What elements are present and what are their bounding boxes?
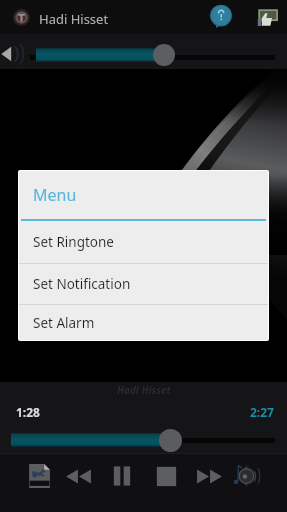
staticText: Menu: [33, 184, 77, 206]
staticText: 1:28: [16, 404, 40, 420]
staticText: Set Alarm: [33, 314, 95, 332]
button[interactable]: Set Ringtone: [19, 221, 268, 263]
button[interactable]: Help: [207, 3, 235, 31]
button[interactable]: Rate app: [252, 3, 280, 31]
button[interactable]: Next: [188, 455, 230, 497]
staticText: Hadi Hisset: [39, 10, 109, 28]
staticText: Set Notification: [33, 275, 131, 293]
button[interactable]: Set Notification: [19, 264, 268, 304]
button[interactable]: Stop: [145, 455, 187, 497]
button[interactable]: Equalizer: [226, 455, 268, 497]
button[interactable]: Playlist: [18, 455, 60, 497]
button[interactable]: Pause: [101, 455, 143, 497]
staticText: Set Ringtone: [33, 233, 114, 251]
staticText: Hadi Hisset: [117, 383, 171, 397]
staticText: 2:27: [250, 404, 274, 420]
button[interactable]: Set Alarm: [19, 305, 268, 340]
button[interactable]: Volume: [0, 45, 26, 63]
button[interactable]: Previous: [57, 455, 99, 497]
